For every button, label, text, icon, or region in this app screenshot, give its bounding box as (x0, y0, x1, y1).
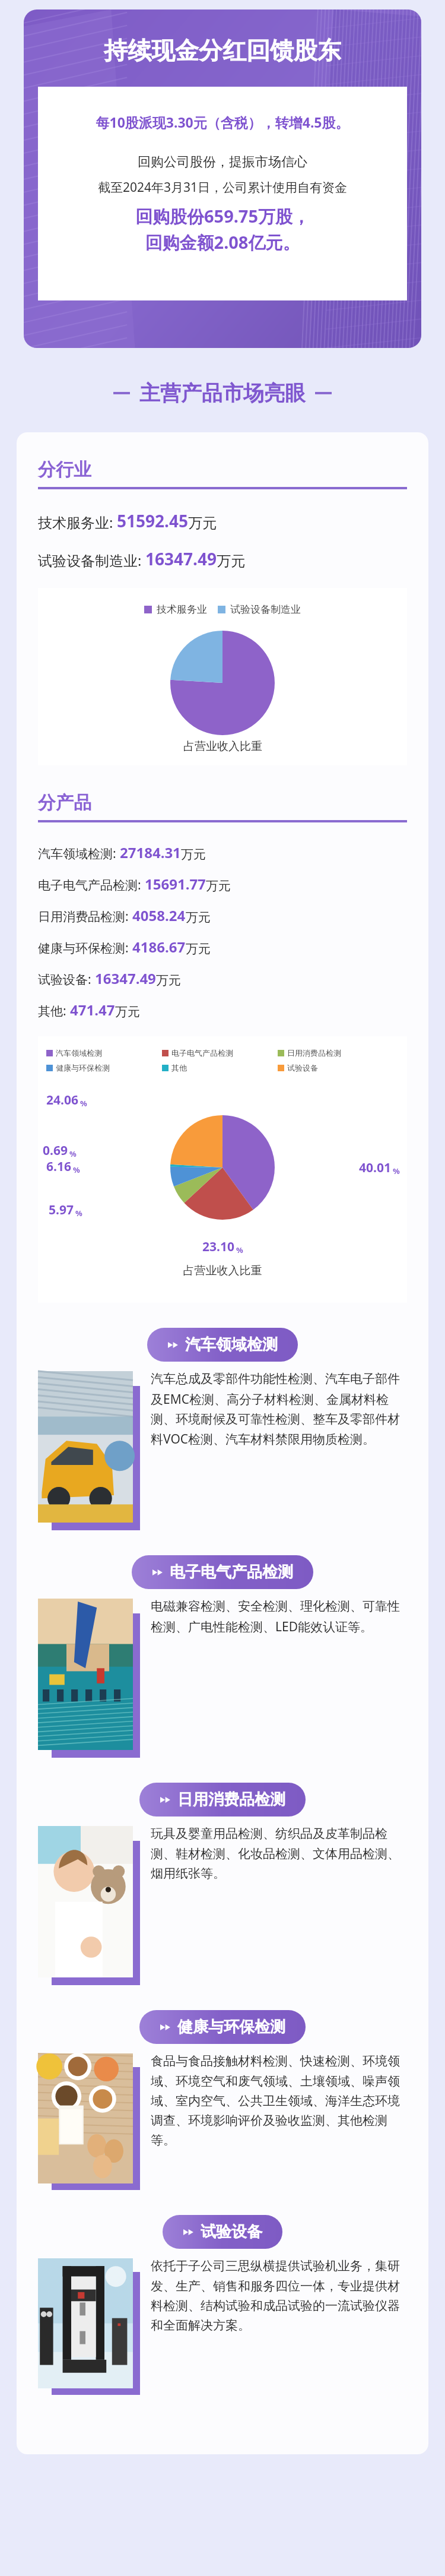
button[interactable]: 日用消费品检测 (139, 1783, 306, 1817)
button[interactable]: 汽车领域检测 (147, 1328, 298, 1362)
staticText: 27184.31 (120, 843, 181, 862)
staticText: 23.10 (202, 1238, 234, 1255)
staticText: 分行业 (38, 458, 91, 481)
staticText: 分产品 (38, 792, 91, 814)
staticText: % (75, 1208, 82, 1219)
staticText: 试验设备 (287, 1063, 318, 1072)
staticText: 51592.45 (117, 509, 188, 532)
staticText: 回购股份659.75万股， (38, 204, 407, 228)
staticText: % (393, 1166, 400, 1176)
staticText: 日用消费品检测 (287, 1048, 341, 1058)
staticText: 日用消费品检测 (177, 1790, 285, 1809)
staticText: 40.01 (359, 1159, 391, 1176)
staticText: 占营业收入比重 (38, 1264, 407, 1278)
staticText: 16347.49 (95, 969, 156, 988)
staticText: % (73, 1164, 80, 1175)
staticText: 回购公司股份，提振市场信心 (38, 154, 407, 170)
staticText: 技术服务业 (157, 603, 207, 616)
staticText: 食品与食品接触材料检测、快速检测、环境领域、环境空气和废气领域、土壤领域、噪声领… (151, 2053, 407, 2148)
staticText: 试验设备制造业: (38, 550, 145, 570)
staticText: 万元 (186, 941, 211, 957)
staticText: 占营业收入比重 (183, 739, 262, 754)
staticText: 万元 (217, 552, 245, 570)
staticText: 24.06 (46, 1091, 78, 1109)
staticText: 万元 (181, 847, 206, 862)
staticText: 万元 (188, 514, 217, 532)
staticText: 试验设备制造业 (230, 603, 301, 616)
staticText: 健康与环保检测 (177, 2017, 285, 2037)
staticText: 万元 (186, 910, 211, 925)
staticText: % (80, 1098, 87, 1109)
staticText: 其他 (171, 1063, 187, 1072)
staticText: 6.16 (46, 1158, 71, 1175)
staticText: 持续现金分红回馈股东 (104, 36, 341, 65)
staticText: % (236, 1245, 243, 1255)
staticText: 其他: (38, 1002, 70, 1020)
staticText: 汽车领域检测 (185, 1335, 278, 1355)
staticText: 截至2024年3月31日，公司累计使用自有资金 (38, 179, 407, 196)
staticText: 依托于子公司三思纵横提供试验机业务，集研发、生产、销售和服务四位一体，专业提供材… (151, 2258, 407, 2333)
staticText: 电子电气产品检测 (170, 1562, 293, 1582)
staticText: 万元 (115, 1004, 140, 1020)
staticText: 技术服务业: (38, 512, 117, 532)
staticText: 16347.49 (145, 548, 217, 570)
staticText: 汽车总成及零部件功能性检测、汽车电子部件及EMC检测、高分子材料检测、金属材料检… (151, 1371, 407, 1447)
staticText: 5.97 (49, 1201, 74, 1219)
staticText: 万元 (156, 973, 181, 988)
staticText: 电子电气产品检测 (171, 1048, 233, 1058)
staticText: 主营产品市场亮眼 (139, 380, 306, 406)
staticText: 汽车领域检测: (38, 845, 120, 862)
staticText: 汽车领域检测 (56, 1048, 102, 1058)
staticText: 电子电气产品检测: (38, 876, 145, 894)
staticText: 每10股派现3.30元（含税），转增4.5股。 (38, 113, 407, 131)
staticText: 15691.77 (145, 874, 206, 894)
staticText: 试验设备 (201, 2222, 262, 2242)
staticText: 电磁兼容检测、安全检测、理化检测、可靠性检测、广电性能检测、LED能效认证等。 (151, 1599, 407, 1635)
button[interactable]: 健康与环保检测 (139, 2010, 306, 2044)
staticText: 4186.67 (132, 937, 186, 957)
staticText: 健康与环保检测: (38, 939, 132, 957)
button[interactable]: 试验设备 (163, 2215, 282, 2249)
staticText: 健康与环保检测 (56, 1063, 110, 1072)
staticText: 回购金额2.08亿元。 (38, 230, 407, 254)
staticText: 0.69 (43, 1142, 68, 1159)
staticText: 日用消费品检测: (38, 908, 132, 925)
staticText: 玩具及婴童用品检测、纺织品及皮革制品检测、鞋材检测、化妆品检测、文体用品检测、烟… (151, 1826, 407, 1881)
staticText: 4058.24 (132, 906, 186, 925)
staticText: 试验设备: (38, 971, 95, 988)
staticText: 万元 (206, 878, 231, 894)
staticText: 471.47 (70, 1000, 115, 1020)
staticText: % (69, 1148, 77, 1159)
button[interactable]: 电子电气产品检测 (132, 1555, 313, 1589)
